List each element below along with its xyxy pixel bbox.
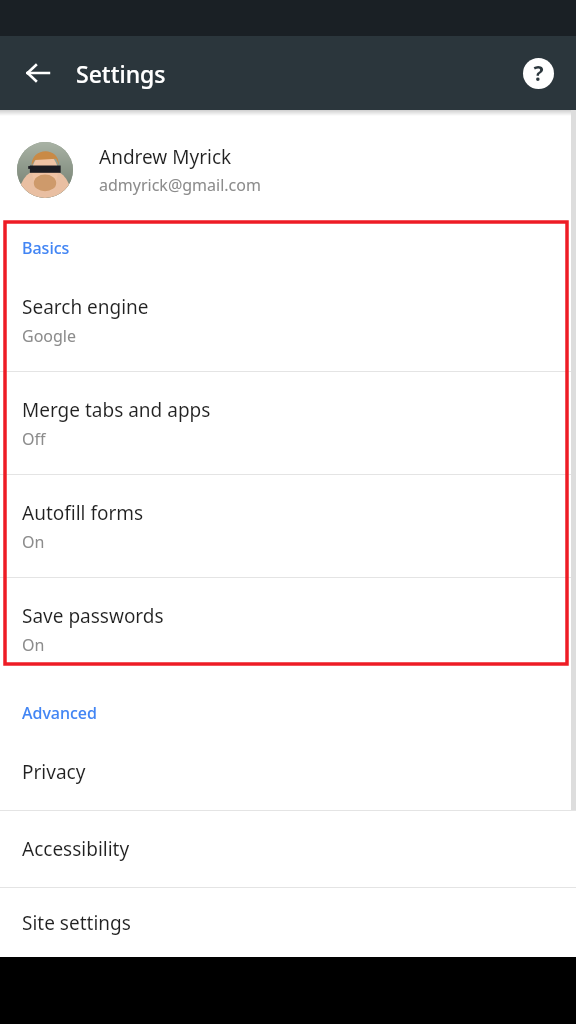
staticText: Basics	[22, 237, 70, 259]
button[interactable]: Merge tabs and apps	[0, 372, 576, 474]
staticText: admyrick@gmail.com	[99, 174, 261, 196]
staticText: Merge tabs and apps	[22, 397, 211, 423]
staticText: Autofill forms	[22, 500, 144, 526]
staticText: On	[22, 634, 45, 656]
staticText: On	[22, 531, 45, 553]
staticText: Settings	[76, 58, 166, 89]
staticText: Search engine	[22, 294, 149, 320]
button[interactable]: Search engine	[0, 269, 576, 371]
button[interactable]: Site settings	[0, 888, 576, 957]
button[interactable]: Accessibility	[0, 811, 576, 887]
staticText: ?	[533, 59, 544, 88]
button[interactable]: Save passwords	[0, 578, 576, 680]
button[interactable]: Help	[512, 47, 564, 99]
staticText: Off	[22, 428, 46, 450]
button[interactable]: Andrew Myrick	[0, 116, 576, 223]
staticText: Advanced	[22, 702, 97, 724]
staticText: Save passwords	[22, 603, 164, 629]
staticText: Google	[22, 325, 77, 347]
button[interactable]: Back	[12, 47, 64, 99]
button[interactable]: Privacy	[0, 734, 576, 810]
button[interactable]: Autofill forms	[0, 475, 576, 577]
staticText: Andrew Myrick	[99, 144, 232, 170]
staticText: Site settings	[22, 910, 131, 936]
staticText: Accessibility	[22, 836, 130, 862]
staticText: Privacy	[22, 759, 86, 785]
